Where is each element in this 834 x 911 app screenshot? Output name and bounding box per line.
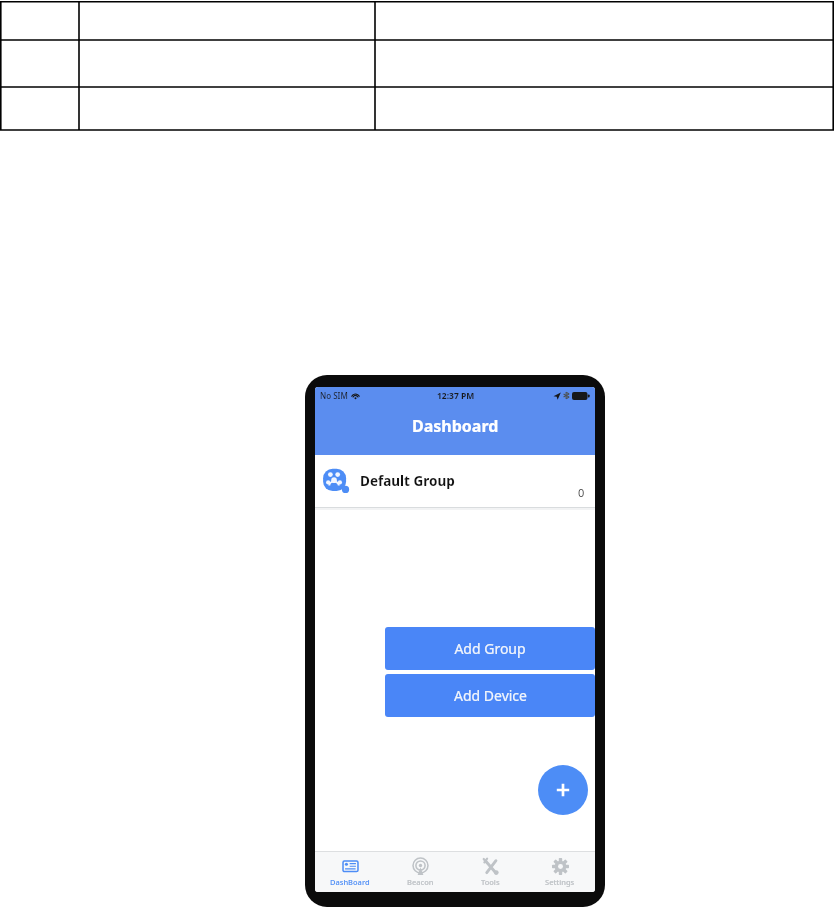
button[interactable]: Add xyxy=(538,765,588,815)
staticText: Default Group xyxy=(360,472,455,490)
button[interactable]: DashBoard xyxy=(315,852,385,892)
staticText: No SIM xyxy=(320,390,348,401)
staticText: Beacon xyxy=(407,877,434,887)
button[interactable]: Settings xyxy=(525,852,595,892)
staticText: Add Device xyxy=(454,686,527,705)
button[interactable]: Beacon xyxy=(385,852,455,892)
staticText: Settings xyxy=(545,877,575,887)
staticText: Tools xyxy=(481,877,500,887)
button[interactable]: Tools xyxy=(455,852,525,892)
staticText: Add Group xyxy=(454,639,526,658)
staticText: Dashboard xyxy=(412,415,499,437)
staticText: DashBoard xyxy=(330,877,370,887)
button[interactable]: Add Group xyxy=(385,627,595,670)
staticText: 0 xyxy=(578,485,585,500)
button[interactable]: Default Group xyxy=(315,455,595,507)
button[interactable]: Add Device xyxy=(385,674,595,717)
staticText: 12:37 PM xyxy=(437,390,475,402)
